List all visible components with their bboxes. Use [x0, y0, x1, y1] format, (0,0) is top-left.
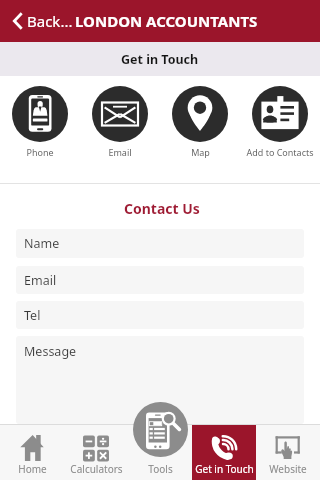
button[interactable]: Home — [0, 425, 64, 480]
button[interactable]: Tel — [16, 301, 304, 329]
staticText: Phone — [26, 146, 54, 158]
button[interactable]: Name — [16, 229, 304, 258]
staticText: Map — [191, 146, 210, 158]
staticText: Tools — [148, 462, 173, 476]
button[interactable]: Add to Contacts — [240, 80, 320, 160]
button[interactable]: Email — [80, 80, 160, 160]
staticText: Email — [24, 272, 57, 289]
staticText: LONDON ACCOUNTANTS — [75, 11, 258, 31]
staticText: Add to Contacts — [246, 146, 314, 158]
button[interactable]: Website — [256, 425, 320, 480]
staticText: Tel — [24, 307, 41, 324]
staticText: Home — [18, 462, 47, 476]
staticText: Message — [24, 343, 77, 360]
staticText: Get in Touch — [121, 51, 199, 68]
button[interactable]: Phone — [0, 80, 80, 160]
staticText: Contact Us — [124, 199, 200, 218]
staticText: Get in Touch — [195, 462, 254, 476]
button[interactable]: Email — [16, 266, 304, 294]
staticText: Name — [24, 235, 60, 252]
button[interactable]: Calculators — [64, 425, 128, 480]
button[interactable]: Back... — [0, 5, 81, 37]
staticText: Email — [108, 146, 132, 158]
button[interactable]: Map — [160, 80, 240, 160]
staticText: Website — [269, 462, 307, 476]
button[interactable]: Get in Touch — [192, 425, 256, 480]
staticText: Back... — [27, 11, 73, 31]
staticText: Calculators — [70, 462, 123, 476]
button[interactable]: Message — [16, 336, 304, 424]
button[interactable]: Tools — [128, 425, 192, 480]
button[interactable]: Tools — [133, 402, 188, 457]
